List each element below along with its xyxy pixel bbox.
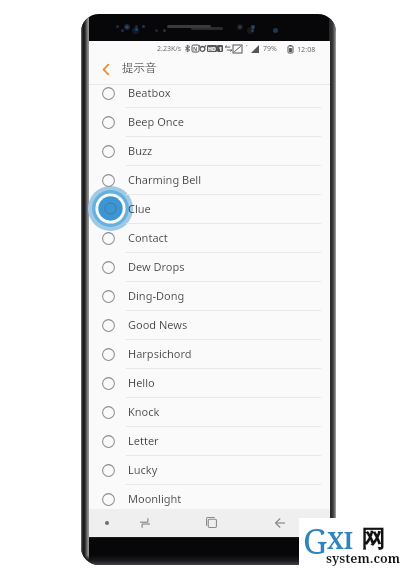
button[interactable]: Beep Once [89,108,330,136]
staticText: Moonlight [128,491,182,506]
staticText: Lucky [128,462,158,477]
staticText: XI [327,524,354,555]
button[interactable]: Contact [89,224,330,252]
button[interactable]: Beatbox [89,79,330,107]
button[interactable]: Hello [89,369,330,397]
staticText: HD [208,45,216,52]
staticText: Knock [128,404,160,419]
staticText: system.com [326,550,400,567]
button[interactable]: Letter [89,427,330,455]
staticText: ' [246,43,248,51]
button[interactable]: Dew Drops [89,253,330,281]
staticText: Contact [128,230,168,245]
button[interactable]: Moonlight [89,485,330,513]
staticText: 提示音 [122,61,157,76]
staticText: N [193,45,198,52]
staticText: Charming Bell [128,172,202,187]
staticText: Beatbox [128,85,171,100]
button[interactable]: Back [89,56,114,79]
staticText: 1 [219,45,222,52]
staticText: 网 [361,524,385,554]
staticText: 2.23K/s [157,44,182,54]
button[interactable]: Recents [132,513,157,532]
staticText: Dew Drops [128,259,185,274]
button[interactable]: Clue selected [88,186,133,231]
button[interactable]: Knock [89,398,330,426]
staticText: Buzz [128,143,153,158]
button[interactable]: Harpsichord [89,340,330,368]
button[interactable]: Buzz [89,137,330,165]
button[interactable]: Good News [89,311,330,339]
staticText: G [303,518,328,564]
button[interactable]: Lucky [89,456,330,484]
staticText: Clue [128,201,151,216]
button[interactable]: Back [267,513,292,532]
button[interactable]: Ding-Dong [89,282,330,310]
staticText: Good News [128,317,188,332]
staticText: 12:08 [297,44,316,54]
staticText: Letter [128,433,159,448]
button[interactable]: Home [199,513,224,532]
staticText: Beep Once [128,114,185,129]
staticText: Harpsichord [128,346,192,361]
staticText: Ding-Dong [128,288,185,303]
button[interactable]: Clue [89,195,330,223]
staticText: Hello [128,375,155,390]
staticText: 79% [263,44,277,54]
button[interactable]: Charming Bell [89,166,330,194]
button[interactable]: Menu [99,515,115,531]
